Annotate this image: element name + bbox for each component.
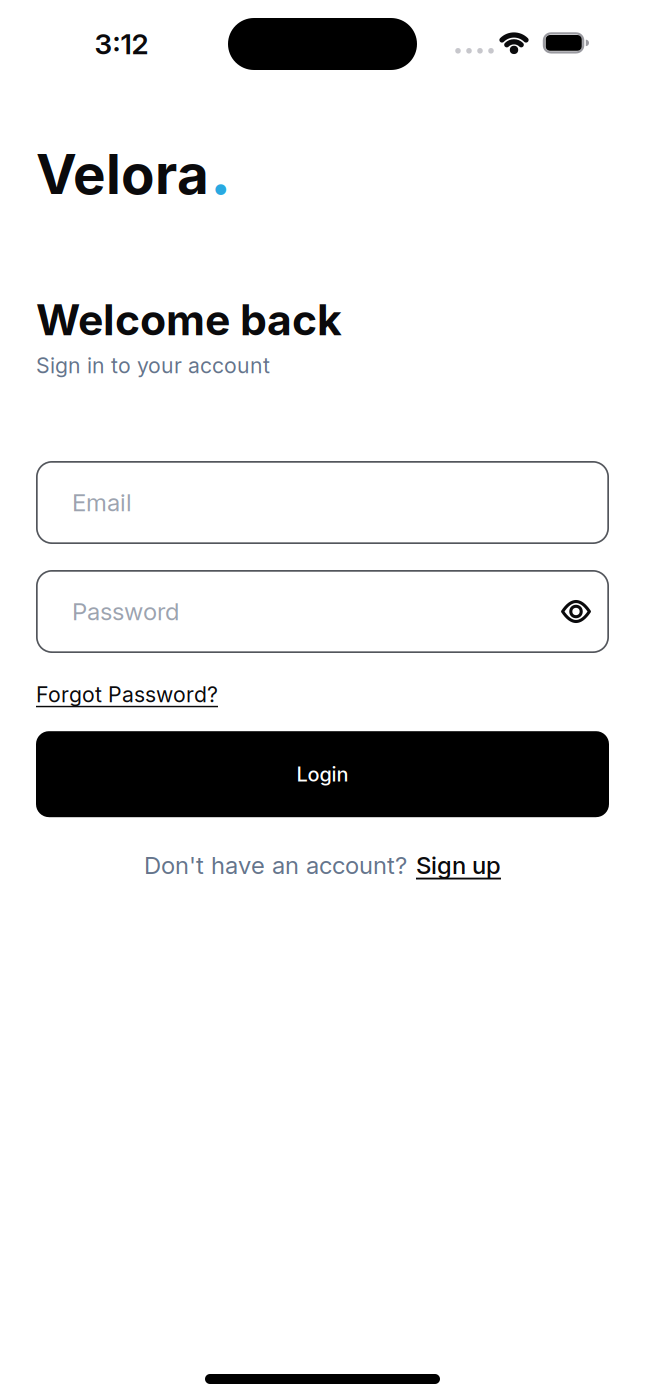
button[interactable]: Show password bbox=[561, 599, 591, 623]
staticText: Sign up bbox=[416, 851, 501, 879]
button[interactable]: Forgot Password? bbox=[36, 682, 218, 707]
staticText: Don't have an account? bbox=[144, 851, 407, 879]
button[interactable]: Login bbox=[36, 731, 609, 817]
staticText: Sign in to your account bbox=[36, 353, 270, 378]
staticText: Password bbox=[72, 597, 179, 626]
staticText: Welcome back bbox=[36, 294, 342, 345]
staticText: . bbox=[210, 133, 231, 208]
button[interactable]: Sign up bbox=[416, 851, 501, 879]
staticText: Email bbox=[72, 488, 132, 517]
staticText: Forgot Password? bbox=[36, 682, 218, 707]
staticText: Login bbox=[296, 762, 348, 786]
staticText: Velora bbox=[36, 142, 209, 206]
staticText: 3:12 bbox=[94, 27, 148, 60]
